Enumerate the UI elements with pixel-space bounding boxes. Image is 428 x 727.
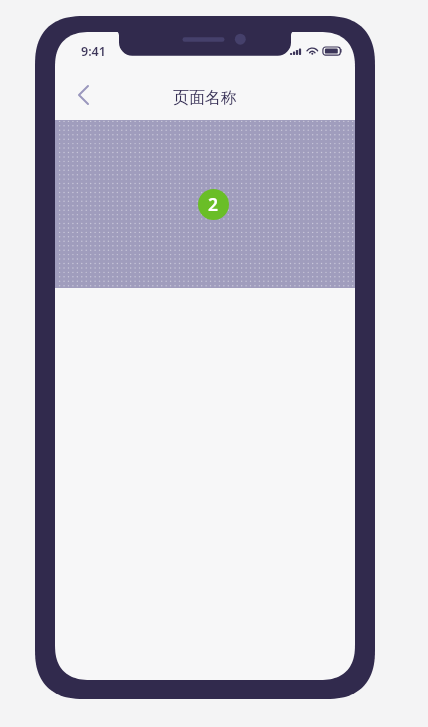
button[interactable]: Back	[61, 73, 105, 117]
staticText: 页面名称	[173, 88, 237, 108]
staticText: 9:41	[81, 43, 106, 60]
button[interactable]: 2	[198, 189, 229, 220]
staticText: 2	[208, 192, 219, 216]
